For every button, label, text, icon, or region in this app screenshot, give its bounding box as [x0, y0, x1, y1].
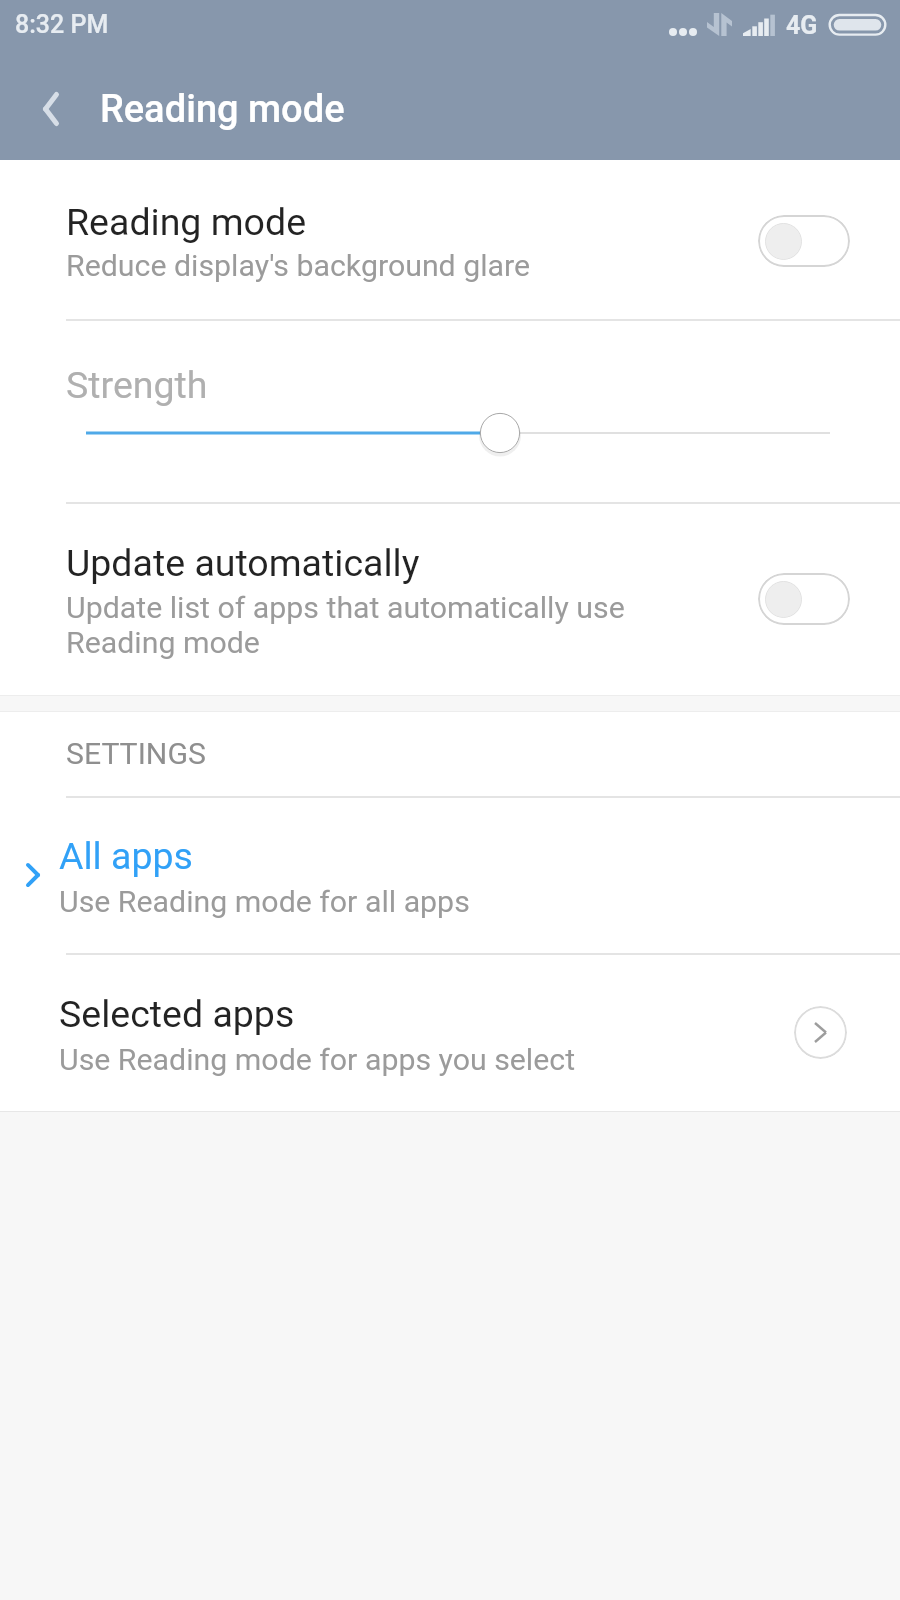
- staticText: Selected apps: [59, 992, 295, 1036]
- button[interactable]: Reading mode: [0, 160, 900, 319]
- staticText: Reading mode: [100, 87, 345, 132]
- button[interactable]: All apps: [0, 796, 900, 953]
- staticText: Use Reading mode for apps you select: [59, 1042, 576, 1078]
- staticText: Update automatically: [66, 541, 420, 585]
- button[interactable]: Update automatically: [0, 502, 900, 695]
- staticText: Strength: [66, 363, 208, 407]
- staticText: Reading mode: [66, 200, 307, 244]
- staticText: Reduce display's background glare: [66, 248, 531, 284]
- button[interactable]: Toggle: [758, 573, 850, 625]
- button[interactable]: Selected apps: [0, 953, 900, 1111]
- button[interactable]: Toggle: [758, 215, 850, 267]
- staticText: 8:32 PM: [15, 10, 109, 39]
- staticText: All apps: [59, 834, 193, 878]
- staticText: Update list of apps that automatically u…: [66, 590, 666, 660]
- button[interactable]: Back: [0, 60, 90, 160]
- button[interactable]: Strength slider: [60, 405, 850, 461]
- staticText: Use Reading mode for all apps: [59, 884, 470, 920]
- staticText: SETTINGS: [66, 736, 206, 771]
- staticText: 4G: [786, 11, 818, 40]
